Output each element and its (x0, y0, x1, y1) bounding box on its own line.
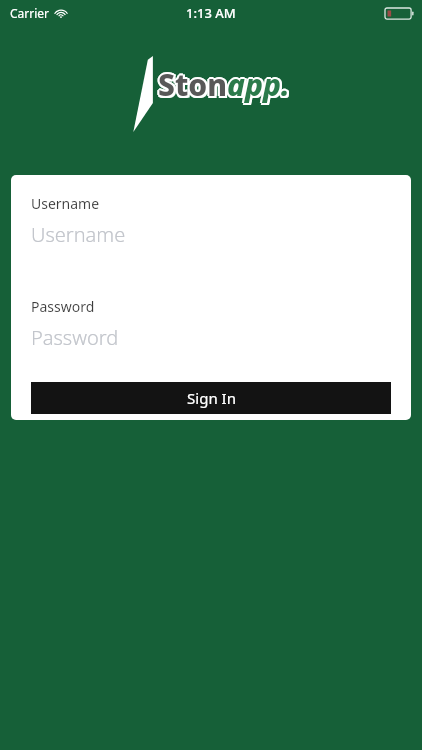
staticText: app. (227, 64, 290, 105)
staticText: Sign In (187, 388, 236, 408)
staticText: Ston (160, 64, 229, 105)
staticText: Ston (158, 62, 227, 103)
staticText: Password (31, 297, 391, 316)
staticText: Ston (158, 64, 227, 105)
staticText: Carrier (10, 5, 50, 21)
staticText: Ston (158, 66, 227, 107)
button[interactable]: Sign In (31, 382, 391, 414)
staticText: app. (227, 62, 290, 103)
staticText: app. (229, 66, 292, 107)
staticText: Ston (156, 64, 225, 105)
button[interactable]: Password (31, 324, 391, 350)
staticText: Password (31, 324, 119, 350)
staticText: Ston (157, 63, 226, 104)
button[interactable]: Username (31, 221, 391, 247)
staticText: app. (229, 63, 292, 104)
staticText: Ston (157, 66, 226, 107)
staticText: app. (229, 64, 292, 105)
staticText: app. (226, 66, 289, 107)
staticText: app. (227, 66, 290, 107)
staticText: app. (226, 63, 289, 104)
staticText: Username (31, 194, 391, 213)
staticText: Username (31, 221, 126, 247)
staticText: Ston (160, 63, 229, 104)
staticText: app. (225, 64, 288, 105)
staticText: Ston (160, 66, 229, 107)
staticText: 1:13 AM (186, 4, 236, 22)
